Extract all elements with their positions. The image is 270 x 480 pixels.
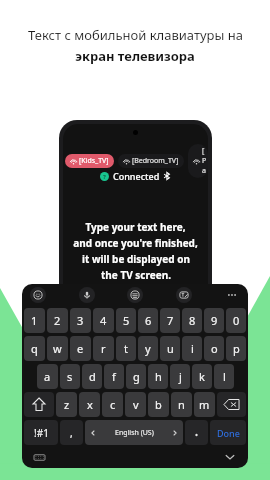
- button[interactable]: b: [148, 392, 169, 417]
- staticText: 6: [145, 313, 152, 328]
- button[interactable]: k: [192, 364, 212, 389]
- button[interactable]: ,: [60, 420, 83, 445]
- button[interactable]: z: [56, 392, 77, 417]
- button[interactable]: English (US): [85, 420, 183, 445]
- button[interactable]: m: [194, 392, 215, 417]
- button[interactable]: Hide keyboard: [222, 449, 238, 465]
- button[interactable]: 7: [160, 308, 180, 333]
- staticText: [Bedroom_TV]: [132, 156, 179, 166]
- staticText: v: [133, 397, 139, 412]
- staticText: Type your text here,: [85, 220, 186, 234]
- button[interactable]: g: [126, 364, 146, 389]
- button[interactable]: l: [214, 364, 234, 389]
- button[interactable]: 4: [93, 308, 114, 333]
- button[interactable]: Backspace: [217, 392, 246, 417]
- button[interactable]: [Kids_TV]: [65, 154, 114, 168]
- button[interactable]: f: [104, 364, 124, 389]
- staticText: English (US): [115, 428, 154, 438]
- button[interactable]: o: [204, 336, 224, 361]
- button[interactable]: i: [182, 336, 202, 361]
- staticText: and once you're finished,: [73, 236, 198, 250]
- staticText: 3: [77, 313, 84, 328]
- button[interactable]: d: [82, 364, 102, 389]
- staticText: 1: [31, 313, 38, 328]
- staticText: p: [233, 341, 240, 356]
- button[interactable]: t: [116, 336, 136, 361]
- button[interactable]: 0: [226, 308, 246, 333]
- button[interactable]: Settings: [127, 287, 143, 303]
- button[interactable]: r: [93, 336, 114, 361]
- staticText: x: [87, 397, 93, 412]
- button[interactable]: Voice input: [79, 287, 95, 303]
- button[interactable]: s: [60, 364, 80, 389]
- staticText: s: [67, 369, 73, 384]
- button[interactable]: j: [170, 364, 190, 389]
- staticText: 8: [189, 313, 196, 328]
- button[interactable]: 3: [70, 308, 91, 333]
- button[interactable]: [Pa: [188, 144, 208, 178]
- button[interactable]: 8: [182, 308, 202, 333]
- button[interactable]: Shift: [24, 392, 54, 417]
- button[interactable]: 1: [24, 308, 45, 333]
- staticText: !#1: [34, 426, 49, 440]
- staticText: q: [31, 341, 38, 356]
- staticText: экран телевизора: [75, 47, 195, 65]
- staticText: n: [178, 397, 185, 412]
- staticText: h: [155, 369, 162, 384]
- staticText: 4: [100, 313, 107, 328]
- button[interactable]: x: [79, 392, 100, 417]
- button[interactable]: h: [148, 364, 168, 389]
- staticText: k: [199, 369, 205, 384]
- staticText: 5: [123, 313, 130, 328]
- staticText: [Pa: [202, 146, 203, 176]
- button[interactable]: !#1: [24, 420, 58, 445]
- button[interactable]: e: [70, 336, 91, 361]
- button[interactable]: 2: [47, 308, 68, 333]
- staticText: it will be displayed on: [82, 252, 190, 266]
- staticText: g: [133, 369, 140, 384]
- staticText: d: [89, 369, 96, 384]
- button[interactable]: v: [125, 392, 146, 417]
- button[interactable]: q: [24, 336, 45, 361]
- staticText: ,: [70, 426, 73, 440]
- button[interactable]: 9: [204, 308, 224, 333]
- staticText: f: [112, 369, 116, 384]
- staticText: [Kids_TV]: [79, 156, 109, 166]
- staticText: r: [101, 341, 106, 356]
- staticText: o: [211, 341, 218, 356]
- staticText: z: [64, 397, 70, 412]
- staticText: the TV screen.: [101, 268, 171, 282]
- staticText: i: [191, 341, 194, 356]
- staticText: 0: [233, 313, 240, 328]
- button[interactable]: Text edit: [176, 287, 192, 303]
- staticText: l: [223, 369, 226, 384]
- button[interactable]: 5: [116, 308, 136, 333]
- staticText: Connected: [113, 170, 160, 182]
- button[interactable]: Switch keyboard: [32, 450, 46, 464]
- staticText: u: [167, 341, 174, 356]
- button[interactable]: More options: [224, 287, 240, 303]
- staticText: e: [77, 341, 84, 356]
- staticText: 7: [167, 313, 174, 328]
- button[interactable]: y: [138, 336, 158, 361]
- staticText: m: [199, 397, 210, 412]
- button[interactable]: 6: [138, 308, 158, 333]
- button[interactable]: u: [160, 336, 180, 361]
- staticText: j: [179, 369, 182, 384]
- staticText: a: [44, 369, 51, 384]
- staticText: Done: [217, 427, 240, 439]
- button[interactable]: p: [226, 336, 246, 361]
- staticText: y: [145, 341, 151, 356]
- button[interactable]: [Bedroom_TV]: [118, 154, 184, 168]
- button[interactable]: a: [37, 364, 58, 389]
- staticText: b: [155, 397, 162, 412]
- button[interactable]: Period: [185, 420, 208, 445]
- staticText: c: [110, 397, 116, 412]
- staticText: Текст с мобильной клавиатуры на: [28, 26, 243, 44]
- staticText: 9: [211, 313, 218, 328]
- button[interactable]: c: [102, 392, 123, 417]
- button[interactable]: n: [171, 392, 192, 417]
- button[interactable]: w: [47, 336, 68, 361]
- button[interactable]: Emoji: [30, 287, 46, 303]
- button[interactable]: Done: [210, 420, 246, 445]
